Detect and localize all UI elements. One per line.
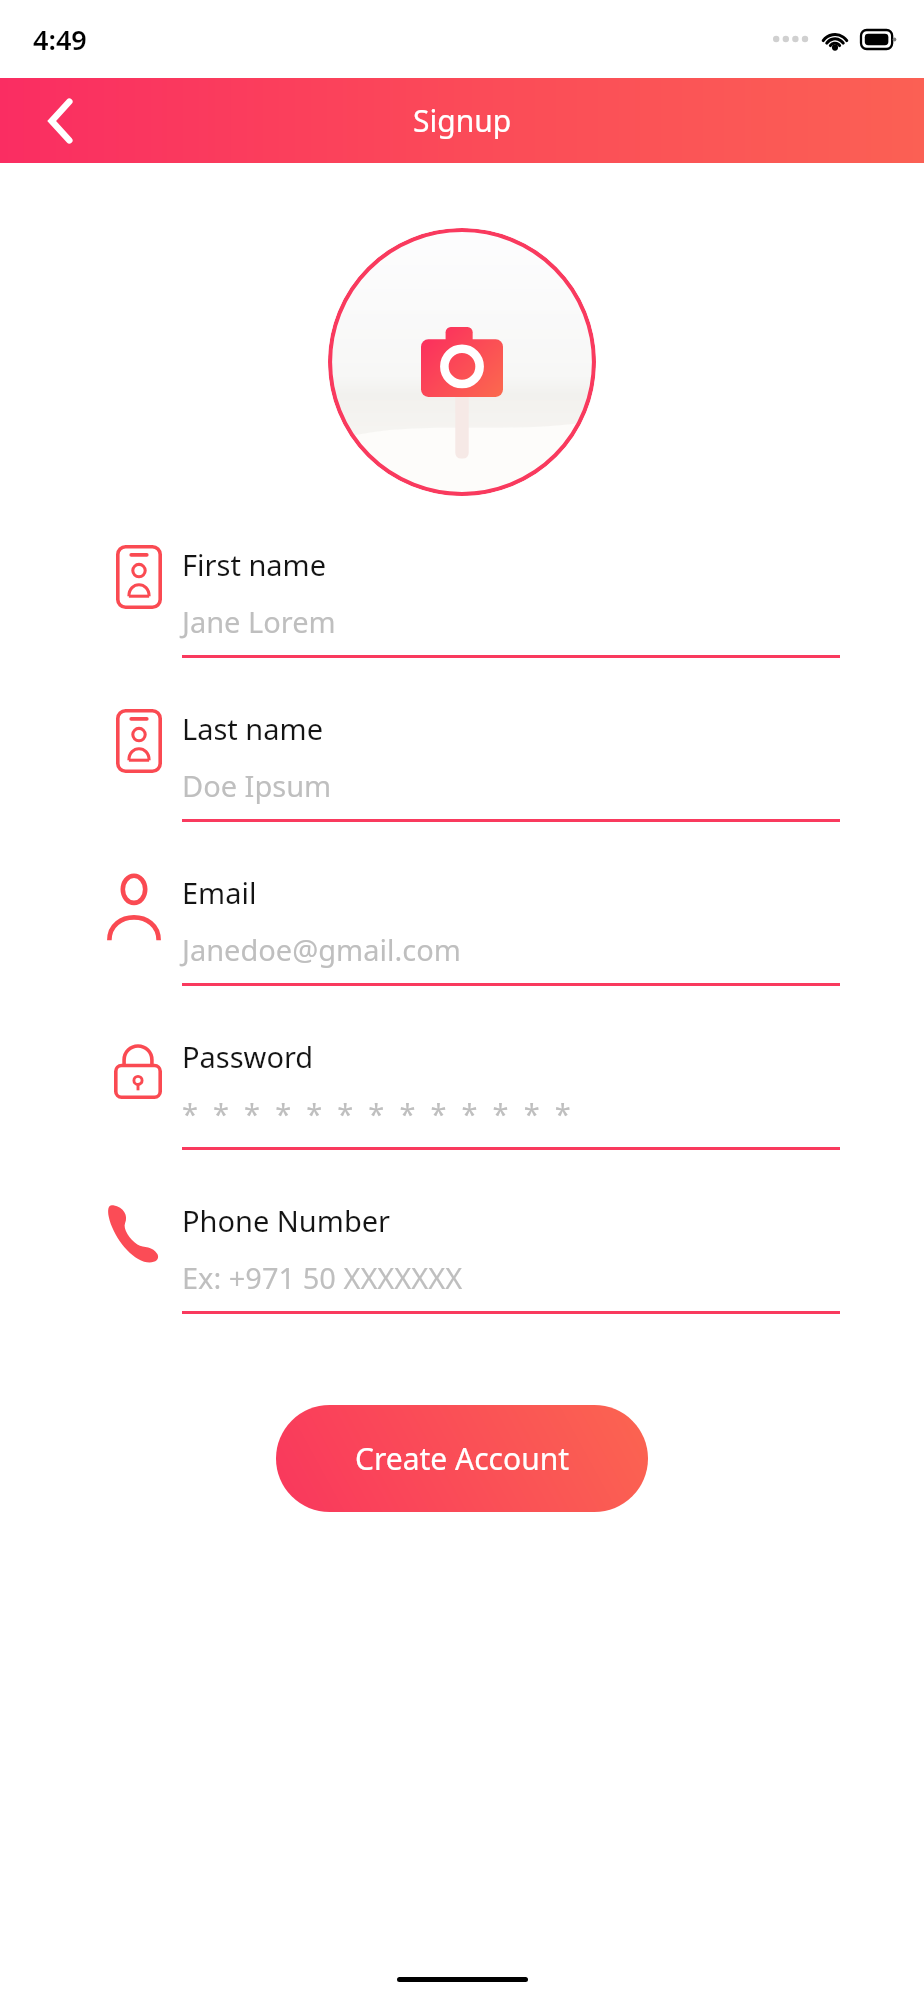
staticText: Password <box>182 1037 314 1076</box>
staticText: First name <box>182 545 327 584</box>
staticText: Phone Number <box>182 1201 391 1240</box>
staticText: Doe Ipsum <box>182 766 332 805</box>
staticText: Last name <box>182 709 324 748</box>
staticText: Signup <box>413 100 512 141</box>
staticText: Email <box>182 873 257 912</box>
staticText: Jane Lorem <box>182 602 336 641</box>
staticText: Janedoe@gmail.com <box>182 930 461 969</box>
button[interactable]: Back <box>34 94 88 148</box>
staticText: Create Account <box>355 1438 570 1479</box>
staticText: * * * * * * * * * * * * * <box>182 1094 571 1133</box>
staticText: 4:49 <box>33 21 87 58</box>
button[interactable]: Create Account <box>276 1405 648 1512</box>
button[interactable]: Change profile photo <box>328 228 596 496</box>
staticText: Ex: +971 50 XXXXXXX <box>182 1258 463 1297</box>
